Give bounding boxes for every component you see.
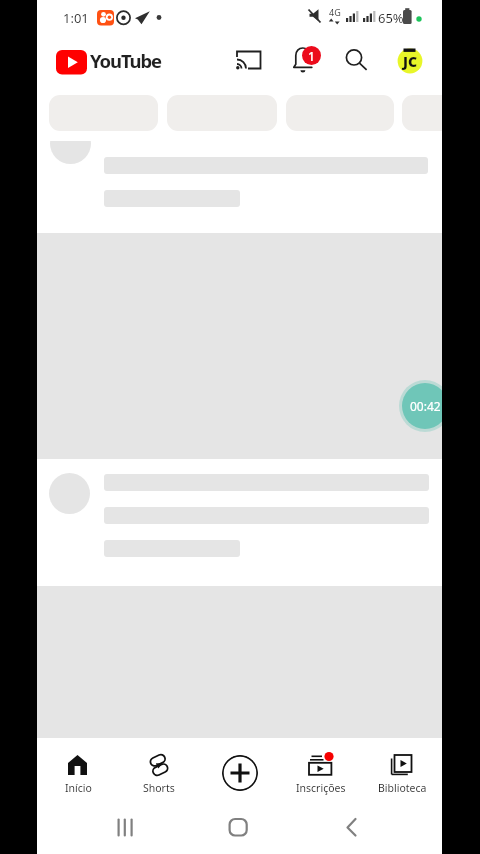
button[interactable]: [290, 748, 352, 798]
button[interactable]: [220, 814, 260, 850]
staticText: 00:42: [410, 398, 441, 414]
button[interactable]: [340, 44, 372, 76]
staticText: JC: [403, 52, 418, 71]
button[interactable]: [222, 755, 258, 791]
button[interactable]: [56, 50, 146, 75]
staticText: Início: [65, 781, 92, 795]
staticText: Biblioteca: [378, 781, 427, 795]
staticText: 4G: [329, 6, 341, 18]
button[interactable]: [37, 233, 442, 459]
button[interactable]: [402, 95, 442, 131]
button[interactable]: [47, 748, 109, 798]
button[interactable]: [107, 814, 147, 850]
button[interactable]: JC: [397, 47, 423, 73]
button[interactable]: 1: [289, 42, 325, 78]
button[interactable]: [128, 748, 190, 798]
staticText: Shorts: [143, 781, 175, 795]
button[interactable]: [335, 814, 375, 850]
button[interactable]: [371, 748, 433, 798]
button[interactable]: 00:42: [402, 383, 442, 429]
staticText: 65%: [378, 9, 404, 27]
staticText: YouTube: [90, 48, 162, 73]
staticText: Inscrições: [296, 781, 346, 795]
staticText: 1:01: [63, 9, 89, 27]
button[interactable]: [231, 45, 265, 75]
staticText: 1: [308, 48, 315, 64]
